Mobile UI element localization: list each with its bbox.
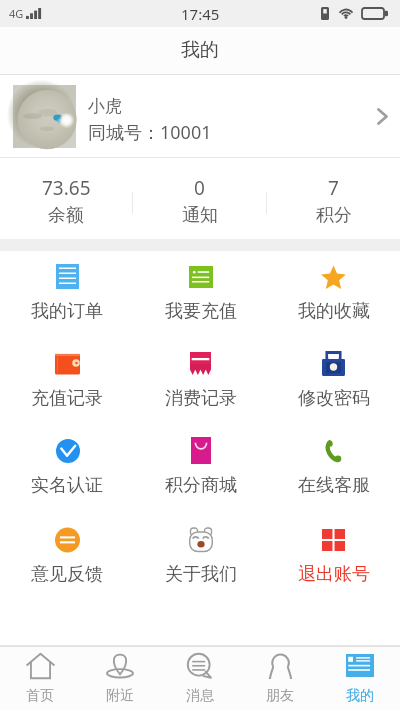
button[interactable]: 附近 bbox=[80, 647, 160, 710]
staticText: 我的 bbox=[346, 687, 374, 705]
button[interactable]: 小虎 bbox=[0, 75, 400, 157]
staticText: 消息 bbox=[186, 687, 214, 705]
staticText: 0 bbox=[194, 175, 205, 201]
button[interactable]: 0 bbox=[133, 158, 266, 239]
staticText: 4G bbox=[9, 6, 24, 21]
staticText: 我的收藏 bbox=[298, 300, 370, 323]
staticText: 意见反馈 bbox=[31, 563, 103, 586]
staticText: 同城号：10001 bbox=[88, 120, 212, 145]
staticText: 附近 bbox=[106, 687, 134, 705]
staticText: 首页 bbox=[26, 687, 54, 705]
button[interactable]: 7 bbox=[267, 158, 400, 239]
button[interactable]: 消息 bbox=[160, 647, 240, 710]
button[interactable]: 充值记录 bbox=[0, 338, 134, 425]
staticText: 73.65 bbox=[42, 175, 91, 201]
button[interactable]: 积分商城 bbox=[134, 425, 267, 514]
button[interactable]: 我的订单 bbox=[0, 251, 134, 338]
staticText: 朋友 bbox=[266, 687, 294, 705]
button[interactable]: 朋友 bbox=[240, 647, 320, 710]
button[interactable]: 意见反馈 bbox=[0, 514, 134, 602]
button[interactable]: 关于我们 bbox=[134, 514, 267, 602]
staticText: 积分 bbox=[316, 204, 352, 227]
staticText: 余额 bbox=[48, 204, 84, 227]
staticText: 充值记录 bbox=[31, 387, 103, 410]
staticText: 我的 bbox=[181, 38, 219, 62]
other: Open profile bbox=[377, 108, 388, 125]
button[interactable]: 实名认证 bbox=[0, 425, 134, 514]
staticText: 通知 bbox=[182, 204, 218, 227]
staticText: 在线客服 bbox=[298, 474, 370, 497]
staticText: 实名认证 bbox=[31, 474, 103, 497]
staticText: 退出账号 bbox=[298, 563, 370, 586]
button[interactable]: 我的收藏 bbox=[267, 251, 400, 338]
button[interactable]: 在线客服 bbox=[267, 425, 400, 514]
button[interactable]: 消费记录 bbox=[134, 338, 267, 425]
button[interactable]: 73.65 bbox=[0, 158, 132, 239]
button[interactable]: 我要充值 bbox=[134, 251, 267, 338]
button[interactable]: 退出账号 bbox=[267, 514, 400, 602]
button[interactable]: 首页 bbox=[0, 647, 80, 710]
staticText: 积分商城 bbox=[165, 474, 237, 497]
staticText: 小虎 bbox=[88, 96, 122, 117]
staticText: 7 bbox=[328, 175, 339, 201]
button[interactable]: 修改密码 bbox=[267, 338, 400, 425]
staticText: 我要充值 bbox=[165, 300, 237, 323]
button[interactable]: 我的 bbox=[320, 647, 400, 710]
staticText: 消费记录 bbox=[165, 387, 237, 410]
staticText: 我的订单 bbox=[31, 300, 103, 323]
staticText: 关于我们 bbox=[165, 563, 237, 586]
staticText: 17:45 bbox=[181, 4, 220, 24]
staticText: 修改密码 bbox=[298, 387, 370, 410]
